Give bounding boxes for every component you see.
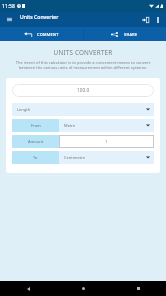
- staticText: SHARE: [124, 32, 138, 37]
- staticText: Metre: [64, 123, 76, 128]
- button[interactable]: From: [12, 119, 154, 132]
- staticText: From: [31, 123, 41, 128]
- staticText: Amount: [28, 139, 44, 144]
- staticText: COMMENT: [37, 32, 59, 37]
- button[interactable]: 100.0: [12, 84, 154, 97]
- staticText: Length: [17, 107, 31, 112]
- button[interactable]: SHARE: [83, 27, 166, 41]
- staticText: The intent of this calculator is to prov…: [14, 60, 152, 71]
- button[interactable]: More options: [152, 12, 164, 27]
- button[interactable]: Recent apps: [111, 281, 166, 296]
- button[interactable]: Back: [0, 281, 56, 296]
- button[interactable]: Navigation menu: [0, 12, 18, 27]
- button[interactable]: COMMENT: [0, 27, 83, 41]
- button[interactable]: Sign out: [138, 12, 152, 27]
- staticText: 11:58: [2, 3, 15, 10]
- staticText: UNITS CONVERTER: [0, 48, 166, 57]
- staticText: To: [33, 155, 38, 160]
- button[interactable]: To: [12, 151, 154, 164]
- staticText: Units Converter: [20, 14, 59, 21]
- staticText: 100.0: [77, 87, 90, 94]
- button[interactable]: Home: [56, 281, 111, 296]
- button[interactable]: Length: [12, 103, 154, 116]
- staticText: 1: [105, 139, 108, 144]
- staticText: Centimetre: [64, 155, 85, 160]
- button[interactable]: 1: [59, 135, 154, 148]
